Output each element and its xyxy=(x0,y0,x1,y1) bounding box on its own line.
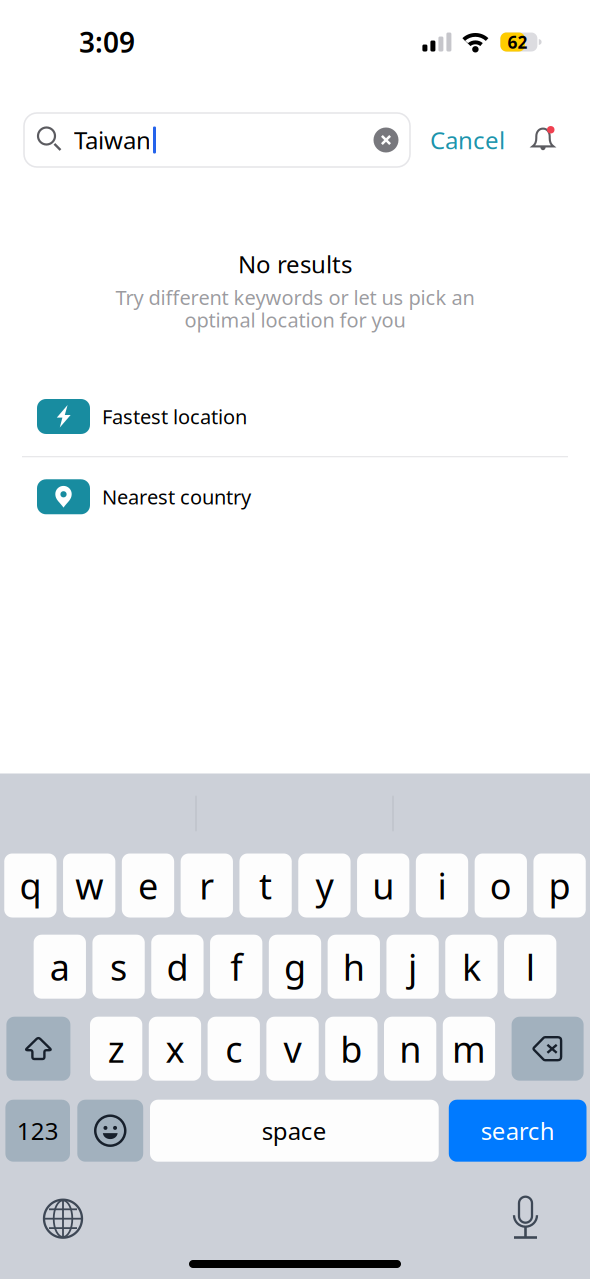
button[interactable]: Change keyboard xyxy=(0,1200,82,1238)
button[interactable]: z xyxy=(90,1017,142,1081)
button[interactable]: t xyxy=(239,853,292,917)
button[interactable]: s xyxy=(92,935,145,999)
staticText: c xyxy=(225,1025,242,1073)
staticText: z xyxy=(108,1025,125,1073)
staticText: e xyxy=(138,862,158,909)
button[interactable]: Shift xyxy=(6,1017,70,1081)
staticText: f xyxy=(230,943,242,991)
staticText: i xyxy=(437,862,446,909)
button[interactable]: w xyxy=(63,853,115,917)
button[interactable]: x xyxy=(149,1017,201,1081)
staticText: Taiwan xyxy=(74,124,151,156)
button[interactable]: d xyxy=(151,935,203,999)
staticText: No results xyxy=(238,248,352,280)
staticText: Nearest country xyxy=(102,483,251,510)
staticText: y xyxy=(315,862,333,909)
button[interactable]: j xyxy=(386,935,439,999)
staticText: search xyxy=(481,1115,555,1147)
staticText: Fastest location xyxy=(102,403,247,430)
button[interactable]: Dictate xyxy=(511,1197,590,1241)
staticText: s xyxy=(110,943,127,991)
button[interactable]: y xyxy=(298,853,350,917)
staticText: n xyxy=(399,1025,421,1073)
button[interactable]: o xyxy=(475,853,527,917)
button[interactable]: space xyxy=(150,1100,439,1162)
staticText: l xyxy=(526,943,535,991)
button[interactable]: r xyxy=(181,853,233,917)
button[interactable]: Cancel xyxy=(410,113,525,167)
button[interactable]: i xyxy=(416,853,468,917)
staticText: space xyxy=(262,1115,327,1147)
button[interactable]: search xyxy=(449,1100,586,1162)
staticText: u xyxy=(372,862,394,909)
staticText: o xyxy=(490,862,512,909)
button[interactable]: m xyxy=(443,1017,495,1081)
staticText: q xyxy=(19,862,41,909)
staticText: m xyxy=(452,1025,486,1073)
button[interactable]: c xyxy=(208,1017,260,1081)
staticText: g xyxy=(284,943,306,991)
button[interactable]: u xyxy=(357,853,409,917)
button[interactable]: p xyxy=(533,853,586,917)
staticText: t xyxy=(259,862,272,909)
staticText: 3:09 xyxy=(79,23,135,61)
button[interactable]: Emoji xyxy=(77,1100,143,1162)
button[interactable]: b xyxy=(325,1017,377,1081)
staticText: j xyxy=(408,943,417,991)
staticText: Try different keywords or let us pick an xyxy=(115,284,474,310)
button[interactable]: Nearest country xyxy=(0,457,590,536)
staticText: b xyxy=(340,1025,362,1073)
staticText: x xyxy=(165,1025,184,1073)
staticText: d xyxy=(166,943,188,991)
button[interactable]: Notifications xyxy=(525,113,572,167)
staticText: k xyxy=(462,943,481,991)
staticText: 123 xyxy=(17,1115,59,1147)
button[interactable]: n xyxy=(384,1017,436,1081)
button[interactable]: l xyxy=(504,935,556,999)
staticText: h xyxy=(343,943,365,991)
staticText: optimal location for you xyxy=(184,306,405,333)
staticText: a xyxy=(50,943,70,991)
button[interactable]: Delete xyxy=(512,1017,584,1081)
staticText: Cancel xyxy=(430,124,505,156)
button[interactable]: k xyxy=(445,935,497,999)
staticText: v xyxy=(283,1025,301,1073)
staticText: w xyxy=(75,862,103,909)
button[interactable]: q xyxy=(4,853,56,917)
button[interactable]: v xyxy=(266,1017,319,1081)
button[interactable]: e xyxy=(122,853,174,917)
button[interactable]: g xyxy=(269,935,321,999)
button[interactable]: Fastest location xyxy=(0,377,590,456)
staticText: p xyxy=(549,862,571,909)
button[interactable]: h xyxy=(328,935,380,999)
button[interactable]: 123 xyxy=(5,1100,70,1162)
staticText: r xyxy=(199,862,214,909)
staticText: 62 xyxy=(507,30,527,53)
button[interactable]: a xyxy=(34,935,86,999)
button[interactable]: f xyxy=(210,935,262,999)
